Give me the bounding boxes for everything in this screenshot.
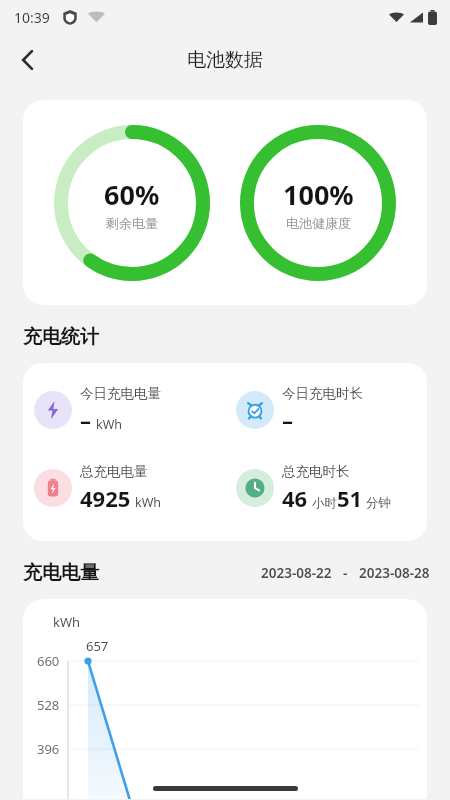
staticText: 10:39 [14,8,50,27]
staticText: 充电统计 [23,325,99,349]
staticText: - [343,564,348,582]
button[interactable]: 今日充电时长 [225,385,427,435]
button[interactable]: 总充电时长 [225,463,427,513]
staticText: 充电电量 [23,561,99,585]
button[interactable]: Back [6,38,50,82]
staticText: 2023-08-28 [359,564,430,582]
staticText: kWh [53,613,81,631]
staticText: 660 [37,652,60,670]
staticText: 100% [283,176,354,213]
staticText: 电池健康度 [286,215,351,231]
button[interactable]: 今日充电电量 [23,385,225,435]
staticText: 今日充电时长 [282,385,363,402]
staticText: 51 [337,483,363,513]
staticText: 46 [282,483,308,513]
staticText: 2023-08-22 [261,564,332,582]
staticText: – [282,405,294,435]
staticText: 小时 [312,495,337,511]
staticText: 528 [37,696,60,714]
staticText: 60% [104,176,160,213]
staticText: 今日充电电量 [80,385,161,402]
staticText: 396 [37,740,60,758]
staticText: 总充电时长 [282,463,350,480]
staticText: 分钟 [366,495,391,511]
staticText: 4925 [80,483,131,513]
staticText: 剩余电量 [106,215,158,231]
staticText: 总充电电量 [80,463,148,480]
staticText: – [80,405,92,435]
staticText: kWh [135,494,162,511]
button[interactable]: 总充电电量 [23,463,225,513]
button[interactable]: 2023-08-22 [261,564,430,582]
staticText: 657 [86,637,109,655]
staticText: 电池数据 [187,48,263,72]
staticText: kWh [96,416,123,433]
